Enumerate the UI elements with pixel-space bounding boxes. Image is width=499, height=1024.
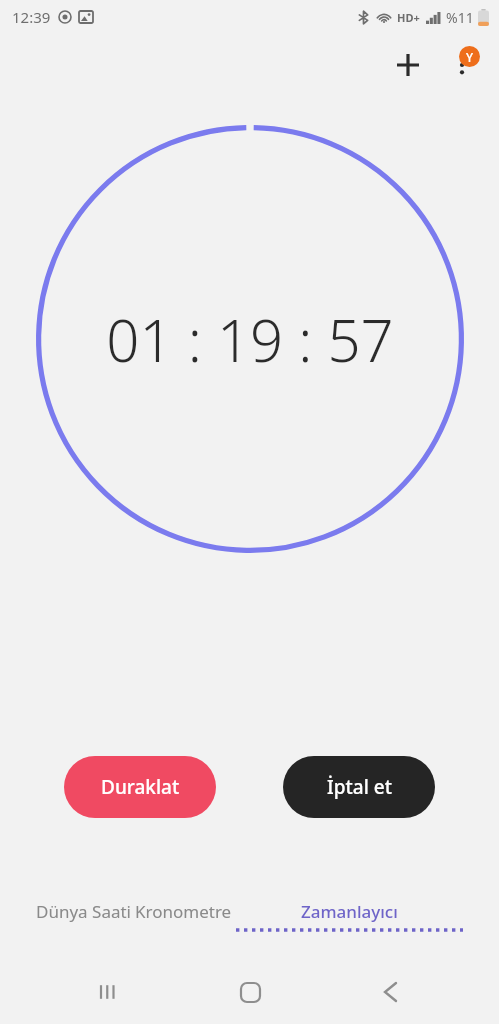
button[interactable]: Home <box>218 960 282 1024</box>
button[interactable]: İptal et <box>283 756 435 818</box>
button[interactable]: More options <box>435 38 489 92</box>
staticText: Y <box>466 49 474 65</box>
staticText: 01 : 19 : 57 <box>106 300 394 379</box>
button[interactable]: Recent apps <box>77 960 141 1024</box>
staticText: 12:39 <box>12 7 51 27</box>
button[interactable]: Back <box>358 960 422 1024</box>
staticText: Zamanlayıcı <box>301 900 398 923</box>
button[interactable]: Kronometre <box>133 896 234 936</box>
button[interactable]: Dünya Saati <box>34 896 133 936</box>
staticText: Dünya Saati <box>36 900 131 923</box>
button[interactable]: Add timer <box>381 38 435 92</box>
button[interactable]: Zamanlayıcı <box>234 896 465 936</box>
staticText: Kronometre <box>135 900 232 923</box>
staticText: %11 <box>446 8 474 27</box>
button[interactable]: Duraklat <box>64 756 216 818</box>
staticText: İptal et <box>327 774 392 800</box>
staticText: Duraklat <box>101 774 180 800</box>
staticText: HD+ <box>397 10 420 25</box>
